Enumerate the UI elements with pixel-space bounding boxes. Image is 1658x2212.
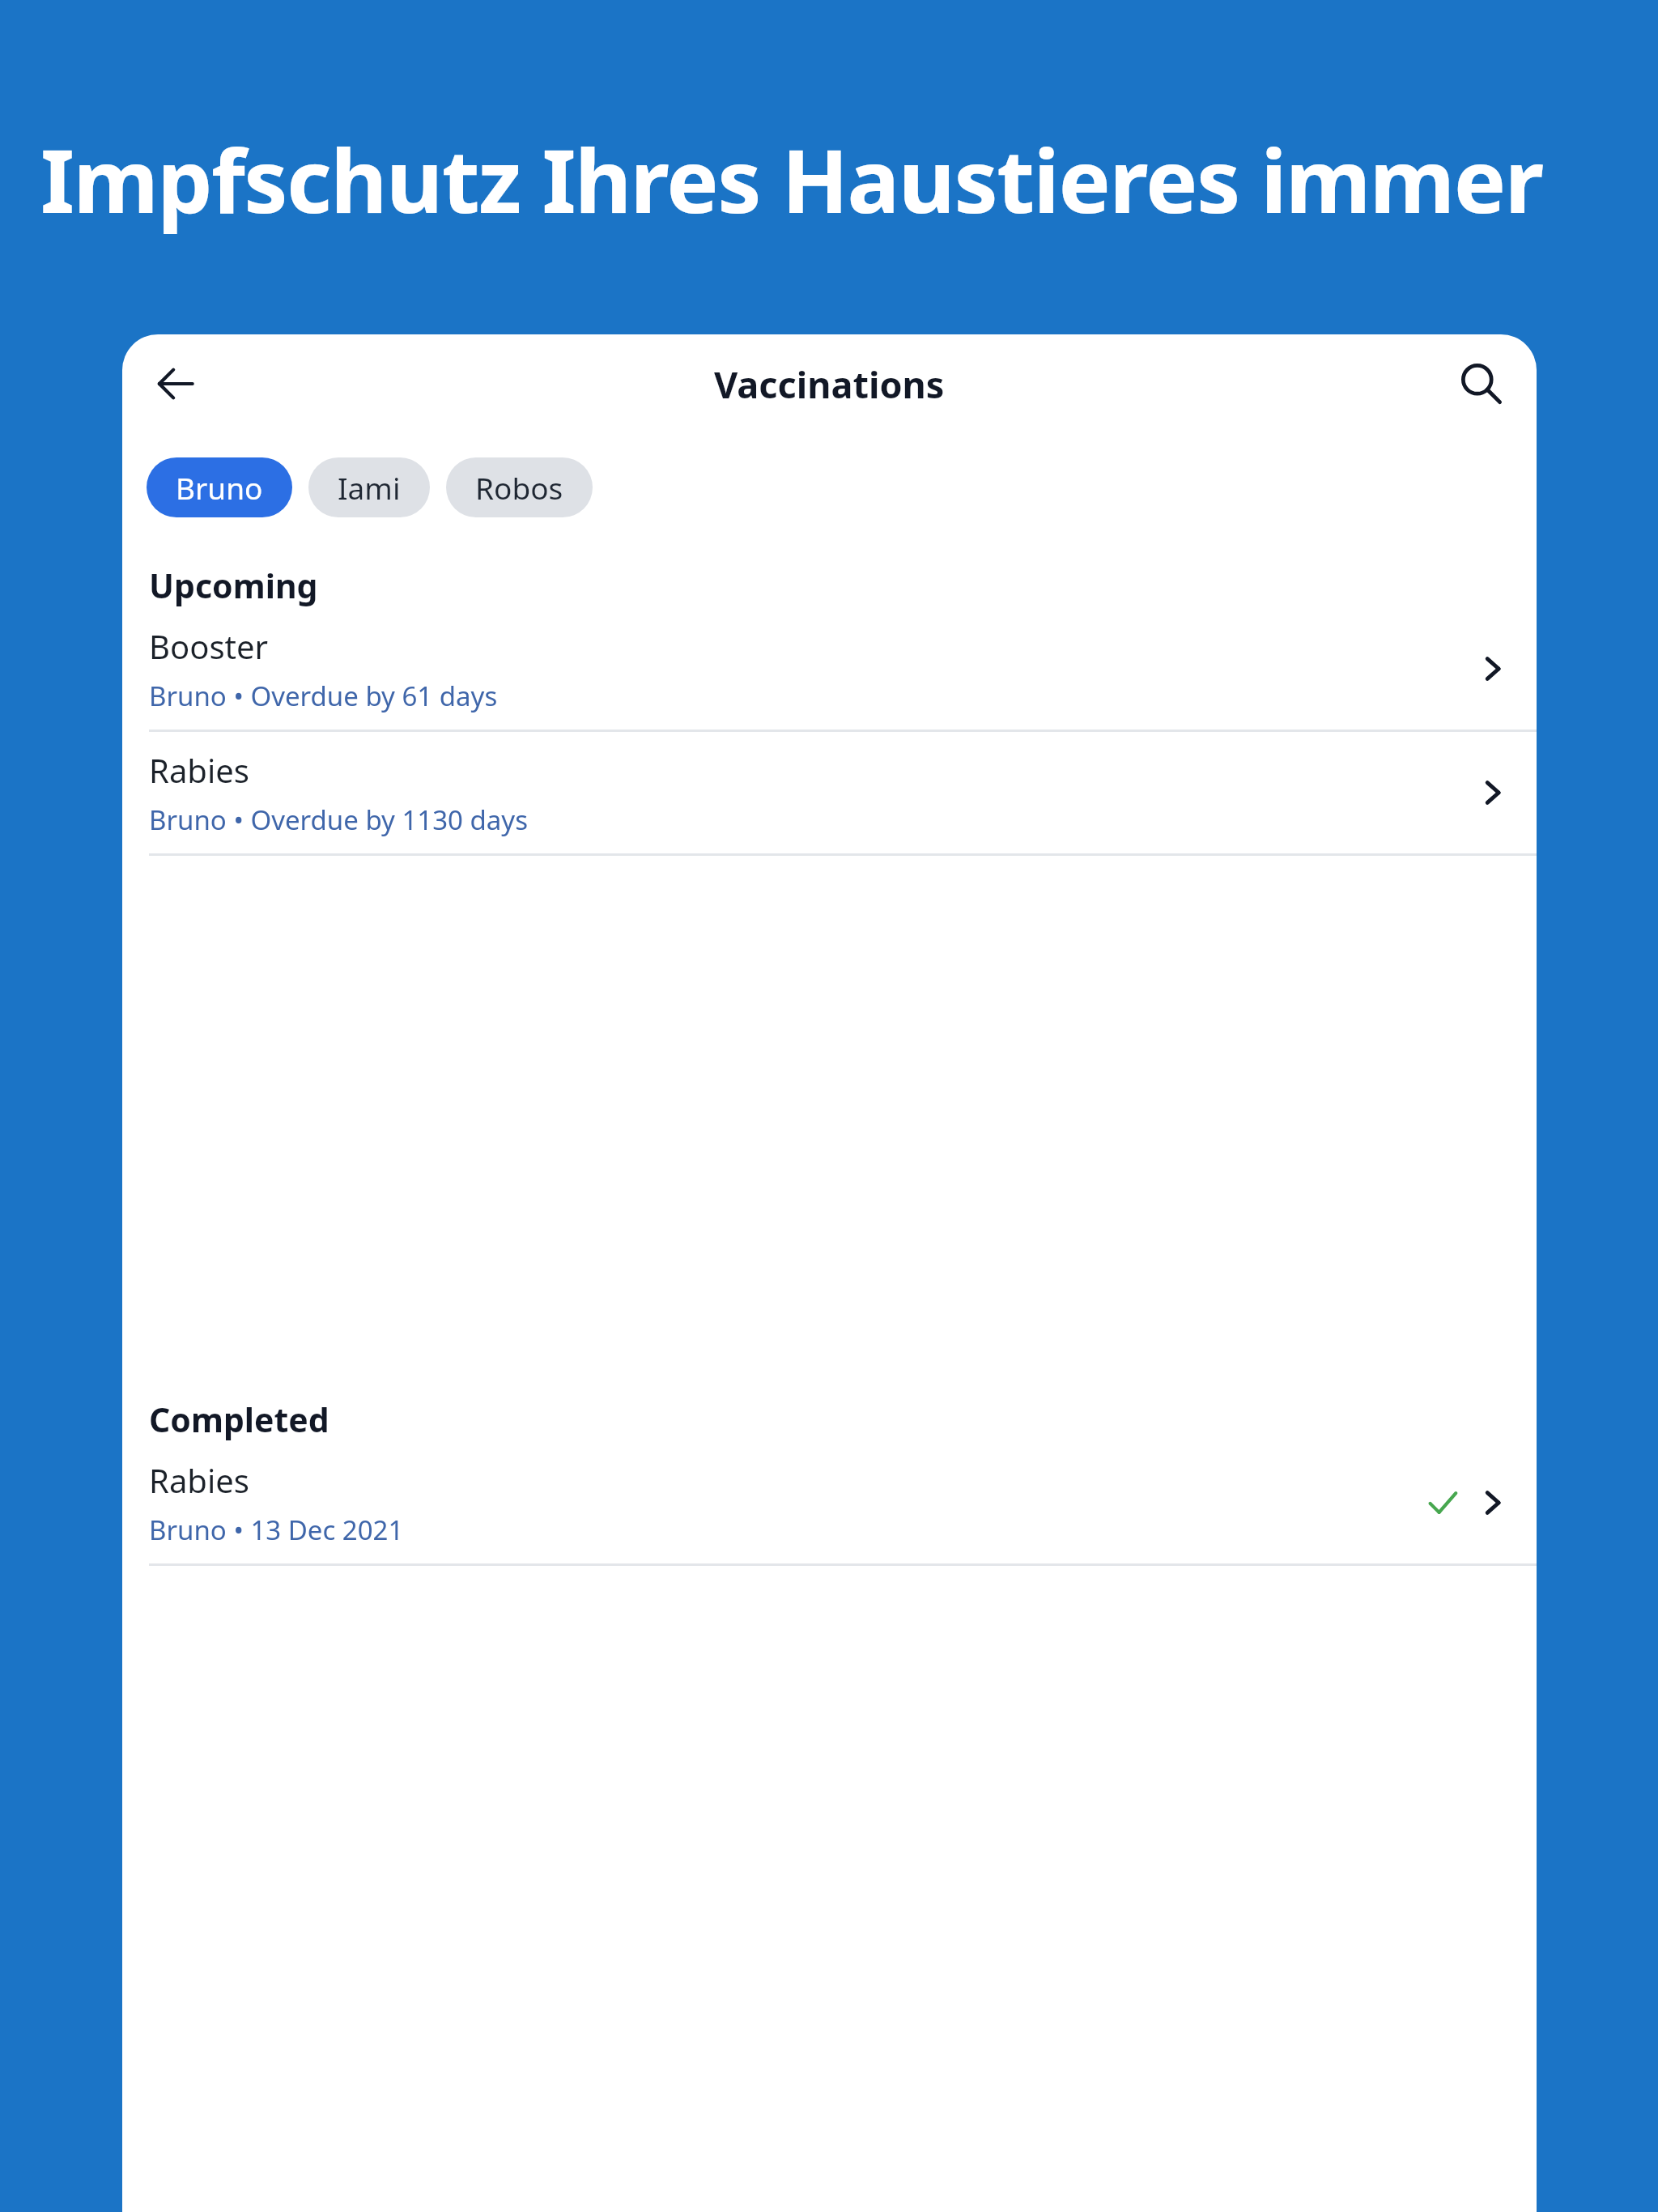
button[interactable]: Search	[1443, 345, 1520, 423]
button[interactable]: Rabies	[122, 1442, 1537, 1566]
staticText: Bruno • Overdue by 61 days	[149, 678, 498, 714]
staticText: Bruno • 13 Dec 2021	[149, 1512, 404, 1548]
staticText: Rabies	[149, 1458, 249, 1502]
button[interactable]: Rabies	[122, 732, 1537, 856]
staticText: Completed	[149, 1397, 329, 1442]
staticText: Vaccinations	[714, 359, 945, 409]
button[interactable]: Booster	[122, 608, 1537, 732]
button[interactable]: Bruno	[147, 457, 292, 517]
button[interactable]: Robos	[446, 457, 593, 517]
staticText: Bruno	[176, 467, 263, 508]
staticText: Impfschutz Ihres Haustieres immer aktuel…	[40, 120, 1658, 239]
button[interactable]: Iami	[308, 457, 430, 517]
staticText: Bruno • Overdue by 1130 days	[149, 802, 528, 838]
staticText: Rabies	[149, 748, 249, 792]
button[interactable]: Back	[137, 345, 215, 423]
staticText: Iami	[338, 467, 401, 508]
staticText: Upcoming	[149, 563, 318, 608]
staticText: Robos	[475, 467, 563, 508]
staticText: Booster	[149, 624, 269, 668]
